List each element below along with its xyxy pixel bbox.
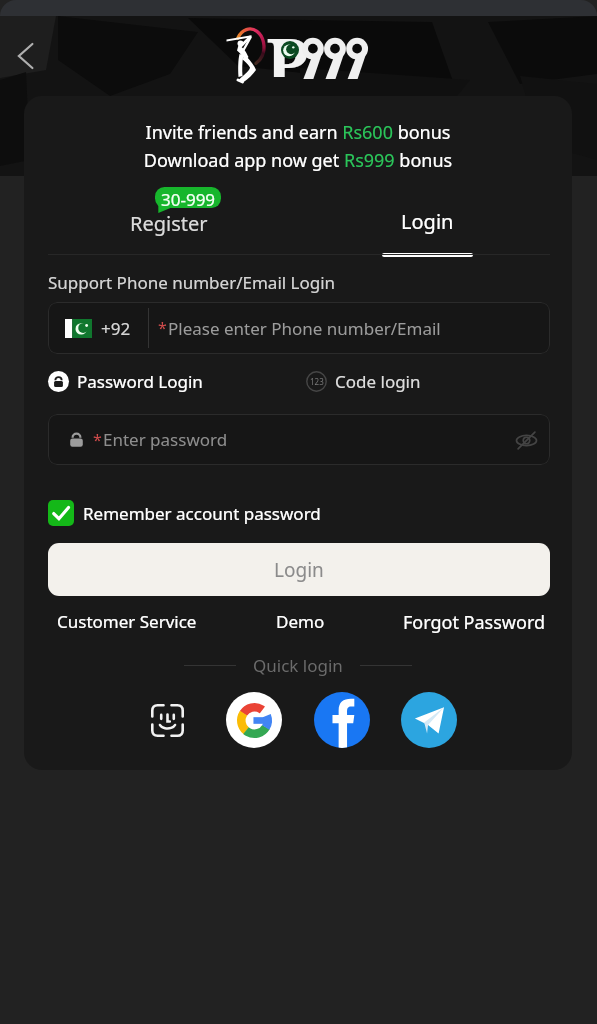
- staticText: Remember account password: [83, 502, 321, 525]
- staticText: Code login: [335, 370, 421, 393]
- button[interactable]: *: [48, 414, 550, 465]
- staticText: Invite friends and earn Rs600 bonus: [24, 120, 572, 145]
- button[interactable]: Sign in with Facebook: [314, 692, 370, 748]
- staticText: Download app now get Rs999 bonus: [24, 148, 572, 173]
- staticText: Enter password: [103, 428, 228, 451]
- button[interactable]: Face ID login: [139, 692, 195, 748]
- staticText: *: [158, 317, 167, 339]
- button[interactable]: Register: [44, 196, 294, 258]
- button[interactable]: +92: [48, 302, 550, 354]
- staticText: Support Phone number/Email Login: [48, 271, 336, 294]
- staticText: +92: [101, 317, 131, 340]
- button[interactable]: Login: [48, 543, 550, 596]
- staticText: Login: [401, 208, 454, 235]
- button[interactable]: Remember account password: [48, 500, 321, 526]
- button[interactable]: 123: [306, 370, 421, 393]
- button[interactable]: Sign in with Telegram: [401, 692, 457, 748]
- button[interactable]: Password Login: [48, 370, 203, 393]
- button[interactable]: Login: [303, 196, 551, 262]
- button[interactable]: Show password: [506, 420, 546, 460]
- button[interactable]: Customer Service: [57, 610, 197, 633]
- staticText: Quick login: [253, 654, 343, 677]
- staticText: Login: [274, 557, 324, 583]
- button[interactable]: Sign in with Google: [226, 692, 282, 748]
- staticText: Register: [130, 210, 208, 237]
- staticText: Forgot Password: [403, 610, 546, 635]
- button[interactable]: Forgot Password: [403, 610, 546, 635]
- staticText: 30-999: [161, 188, 216, 211]
- staticText: Customer Service: [57, 610, 197, 633]
- staticText: 123: [310, 376, 324, 387]
- button[interactable]: Back: [3, 34, 47, 78]
- staticText: P: [266, 15, 309, 77]
- staticText: Demo: [276, 610, 325, 633]
- button[interactable]: Demo: [276, 610, 325, 633]
- staticText: Please enter Phone number/Email: [168, 317, 441, 340]
- staticText: *: [93, 429, 102, 451]
- staticText: Password Login: [77, 370, 203, 393]
